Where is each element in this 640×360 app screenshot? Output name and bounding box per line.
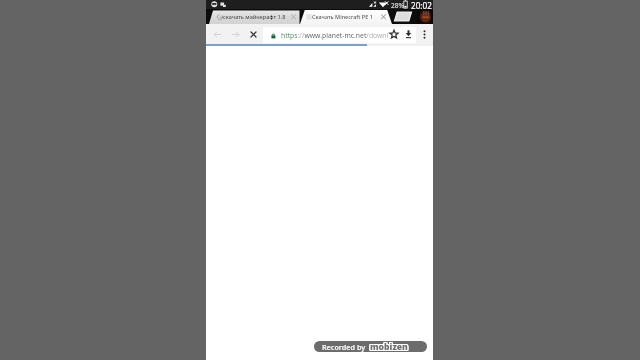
staticText: mobizen xyxy=(370,341,408,352)
staticText: 28% xyxy=(391,1,404,10)
staticText: Recorded by xyxy=(322,342,366,352)
staticText: mobizen xyxy=(370,342,408,352)
button[interactable]: скачать майнкрафт 1.8 xyxy=(209,9,300,24)
staticText: mobizen xyxy=(371,341,409,351)
staticText: mobizen xyxy=(370,341,408,351)
button[interactable]: New tab xyxy=(393,12,412,21)
button[interactable]: Stop loading xyxy=(245,24,262,45)
button[interactable]: More options xyxy=(418,24,431,45)
button[interactable]: Close tab xyxy=(377,9,390,24)
staticText: mobizen xyxy=(371,342,409,352)
staticText: скачать майнкрафт 1.8 xyxy=(223,13,287,20)
staticText: 20:02 xyxy=(411,0,432,9)
button[interactable]: Account xyxy=(417,9,433,24)
staticText: mobizen xyxy=(369,341,407,351)
button[interactable]: https://www.planet-mc.net/downl xyxy=(263,27,416,43)
button[interactable]: Back xyxy=(209,24,226,45)
staticText: mobizen xyxy=(371,341,409,352)
staticText: Скачать Minecraft PE 1 xyxy=(312,13,376,20)
button[interactable]: Download xyxy=(401,24,416,45)
staticText: mobizen xyxy=(370,341,408,352)
button[interactable]: Скачать Minecraft PE 1 xyxy=(300,9,392,24)
staticText: https://www.planet-mc.net/downl xyxy=(281,31,391,40)
button[interactable]: Bookmark xyxy=(387,24,401,45)
button[interactable]: Forward xyxy=(227,24,244,45)
button[interactable]: Close tab xyxy=(287,9,300,24)
staticText: mobizen xyxy=(369,342,407,352)
staticText: mobizen xyxy=(369,341,407,352)
